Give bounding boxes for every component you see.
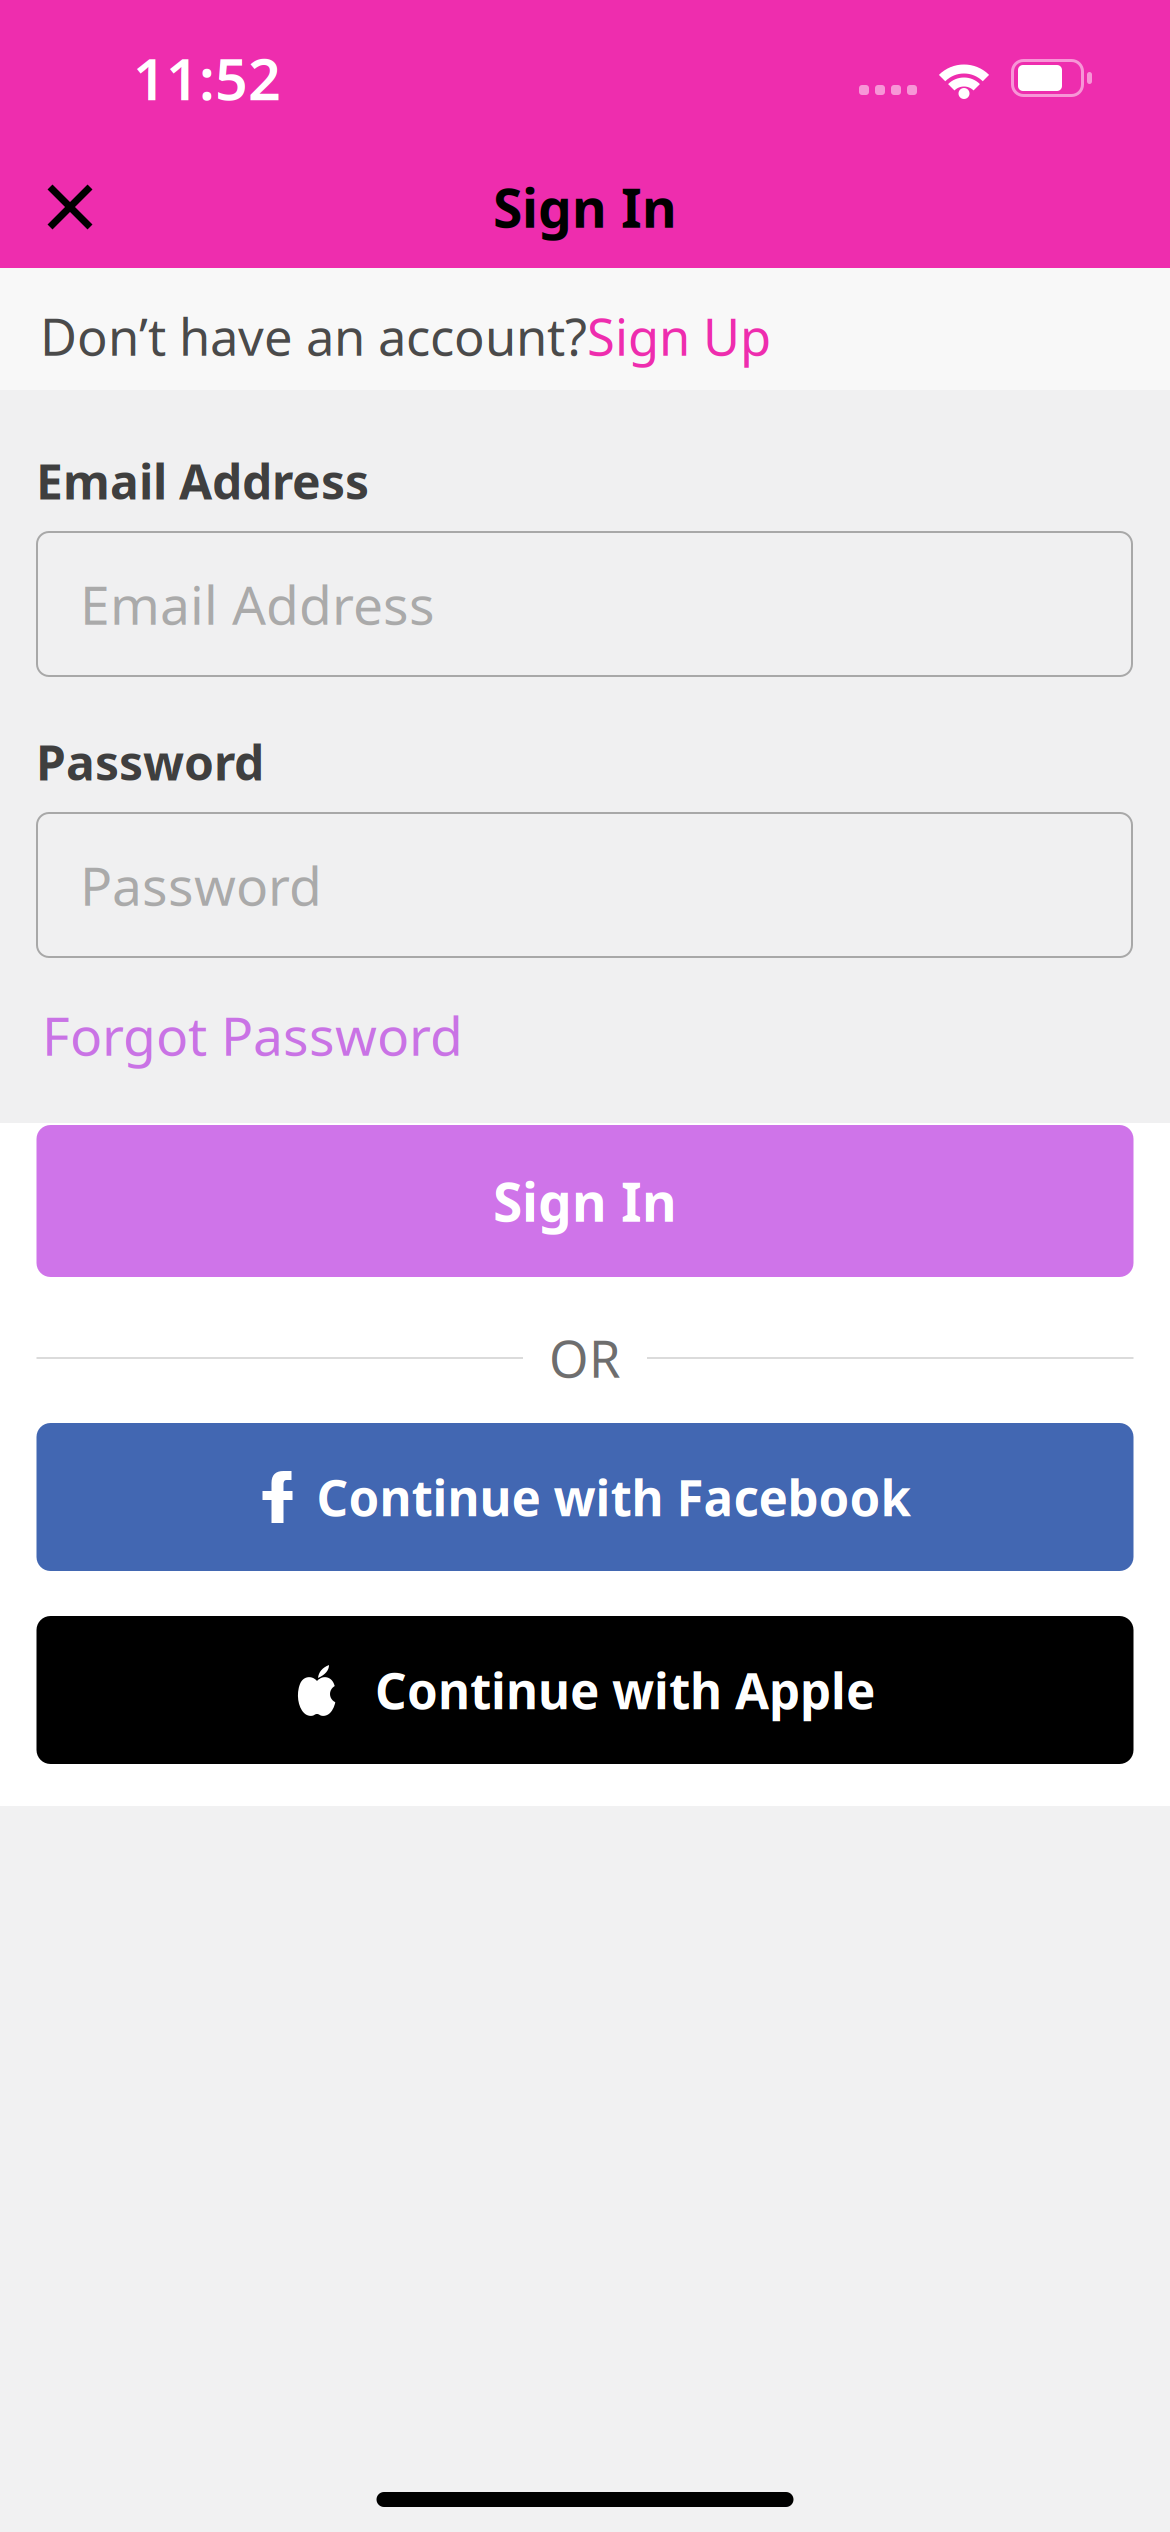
staticText: Forgot Password [42,1000,463,1070]
staticText: Sign In [493,172,677,242]
button[interactable]: Password [36,812,1133,958]
staticText: Password [36,730,264,794]
button[interactable]: Continue with Facebook [36,1423,1133,1571]
button[interactable]: Forgot Password [36,958,463,1058]
staticText: OR [549,1324,621,1392]
staticText: Continue with Facebook [316,1464,911,1530]
button[interactable]: Sign In [36,1125,1133,1277]
staticText: Continue with Apple [375,1657,875,1723]
staticText: Password [80,850,322,920]
button[interactable]: Sign Up [587,302,771,370]
staticText: Email Address [80,569,435,639]
staticText: Don’t have an account? [40,302,587,370]
staticText: Email Address [36,449,369,513]
button[interactable]: Continue with Apple [36,1616,1133,1764]
staticText: Sign Up [587,302,771,370]
button[interactable]: Email Address [36,531,1133,677]
button[interactable]: Close [0,155,122,259]
staticText: 11:52 [133,40,281,116]
staticText: Sign In [493,1166,677,1236]
